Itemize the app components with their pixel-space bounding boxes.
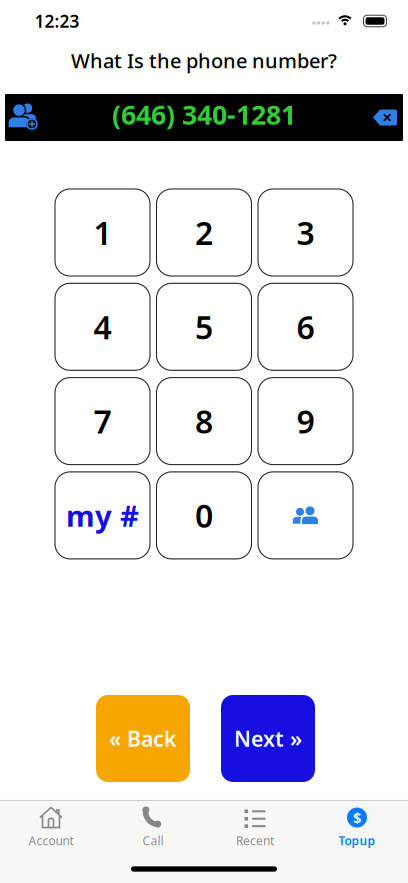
- staticText: $: [353, 808, 361, 827]
- button[interactable]: my #: [55, 472, 150, 559]
- button[interactable]: 7: [55, 378, 150, 465]
- button[interactable]: 2: [156, 189, 251, 276]
- button[interactable]: 5: [156, 283, 251, 370]
- staticText: 0: [195, 494, 213, 537]
- button[interactable]: 6: [258, 283, 353, 370]
- staticText: Next »: [234, 724, 302, 753]
- button[interactable]: Recent: [210, 802, 300, 852]
- staticText: my #: [66, 496, 139, 535]
- staticText: Account: [28, 832, 73, 848]
- staticText: 5: [195, 306, 213, 348]
- staticText: « Back: [109, 724, 177, 753]
- staticText: 4: [93, 306, 111, 348]
- button[interactable]: 8: [156, 378, 251, 465]
- button[interactable]: 9: [258, 378, 353, 465]
- staticText: 8: [195, 400, 213, 442]
- button[interactable]: Account: [6, 802, 96, 852]
- button[interactable]: 0: [156, 472, 251, 559]
- button[interactable]: Add contact: [5, 94, 47, 141]
- button[interactable]: Delete digit: [363, 94, 403, 141]
- button[interactable]: Next »: [221, 695, 315, 782]
- button[interactable]: Contacts: [258, 472, 353, 559]
- staticText: 6: [296, 306, 314, 348]
- staticText: 3: [296, 211, 314, 254]
- staticText: Topup: [338, 832, 375, 848]
- staticText: 9: [296, 400, 314, 442]
- staticText: 12:23: [34, 9, 79, 32]
- button[interactable]: 1: [55, 189, 150, 276]
- button[interactable]: 4: [55, 283, 150, 370]
- staticText: (646) 340-1281: [112, 97, 296, 132]
- staticText: What Is the phone number?: [71, 47, 337, 74]
- staticText: 2: [195, 211, 213, 254]
- button[interactable]: Call: [108, 802, 198, 852]
- staticText: 1: [93, 211, 111, 254]
- staticText: Recent: [236, 832, 274, 848]
- staticText: 7: [93, 400, 111, 442]
- button[interactable]: $: [312, 802, 402, 852]
- staticText: Call: [142, 832, 163, 848]
- button[interactable]: « Back: [96, 695, 190, 782]
- button[interactable]: 3: [258, 189, 353, 276]
